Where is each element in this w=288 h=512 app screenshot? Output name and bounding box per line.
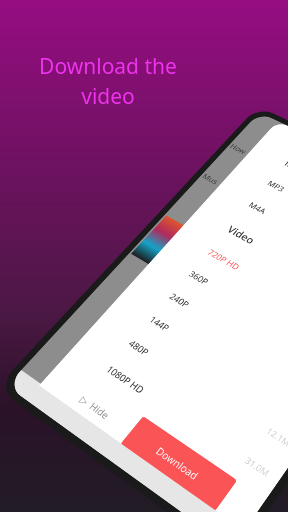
- staticText: 360P: [187, 268, 212, 287]
- staticText: Music: [282, 157, 288, 179]
- button[interactable]: Download: [121, 416, 237, 510]
- staticText: 480P: [126, 337, 152, 358]
- staticText: 12.1M: [263, 425, 288, 450]
- staticText: 1080P HD: [104, 362, 147, 396]
- staticText: Download the video: [0, 52, 218, 110]
- staticText: 31.0M: [242, 455, 272, 481]
- staticText: Mus: [200, 171, 222, 186]
- staticText: Download: [153, 443, 202, 483]
- staticText: How: [228, 141, 249, 156]
- staticText: 720P HD: [206, 246, 243, 272]
- staticText: MP3: [265, 178, 287, 194]
- staticText: 144P: [147, 313, 173, 334]
- staticText: ▷ Hide: [77, 392, 113, 422]
- staticText: 240P: [167, 290, 192, 310]
- staticText: Video: [224, 223, 258, 247]
- staticText: M4A: [247, 200, 269, 216]
